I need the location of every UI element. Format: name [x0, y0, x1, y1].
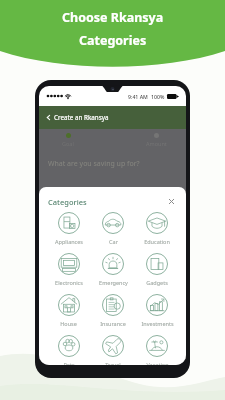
button[interactable]: Emergency [91, 253, 135, 286]
staticText: Travel [105, 361, 121, 365]
button[interactable]: Appliances [46, 212, 91, 245]
staticText: Appliances [55, 238, 83, 245]
staticText: Categories [48, 197, 87, 207]
staticText: Choose Rkansya [62, 9, 164, 26]
button[interactable]: Insurance [91, 294, 135, 327]
staticText: 100% [151, 93, 165, 100]
staticText: Goal [62, 140, 74, 147]
staticText: Education [144, 238, 170, 245]
button[interactable]: Education [135, 212, 179, 245]
staticText: Insurance [100, 320, 126, 327]
button[interactable]: Close [166, 196, 177, 207]
button[interactable]: Car [91, 212, 135, 245]
staticText: Emergency [99, 279, 128, 286]
button[interactable]: Back [44, 113, 53, 122]
button[interactable]: Pets [46, 335, 91, 365]
staticText: Amount [146, 140, 167, 147]
staticText: Electronics [55, 279, 83, 286]
button[interactable]: Electronics [46, 253, 91, 286]
staticText: Investments [141, 320, 174, 327]
staticText: Pets [63, 361, 75, 365]
staticText: What are you saving up for? [48, 159, 140, 169]
button[interactable]: Gadgets [135, 253, 179, 286]
button[interactable]: House [46, 294, 91, 327]
staticText: Categories [79, 32, 147, 49]
staticText: Gadgets [146, 279, 168, 286]
staticText: Vacation [146, 361, 169, 365]
staticText: Create an Rkansya [54, 113, 109, 122]
staticText: House [60, 320, 77, 327]
staticText: Car [109, 238, 118, 245]
button[interactable]: Travel [91, 335, 135, 365]
staticText: 9:41 AM [128, 93, 148, 100]
button[interactable]: Investments [135, 294, 179, 327]
button[interactable]: Vacation [135, 335, 179, 365]
